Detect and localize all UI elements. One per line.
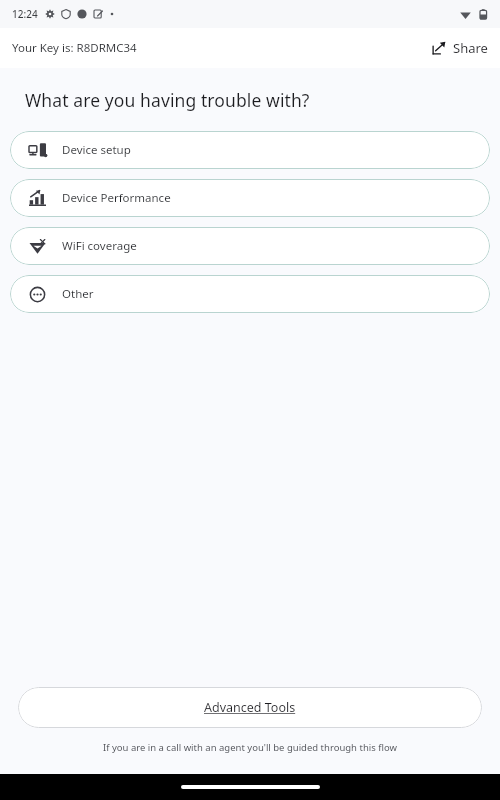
staticText: WiFi coverage: [62, 238, 137, 254]
staticText: Your Key is: R8DRMC34: [12, 40, 137, 56]
button[interactable]: Device Performance: [10, 179, 490, 217]
button[interactable]: Other: [10, 275, 490, 313]
staticText: Device Performance: [62, 190, 171, 206]
staticText: Share: [453, 39, 488, 57]
staticText: If you are in a call with an agent you'l…: [103, 741, 397, 754]
button[interactable]: WiFi coverage: [10, 227, 490, 265]
button[interactable]: Share: [422, 33, 500, 63]
staticText: Advanced Tools: [204, 699, 296, 716]
staticText: 12:24: [12, 7, 38, 21]
staticText: What are you having trouble with?: [25, 88, 310, 112]
staticText: Device setup: [62, 142, 131, 158]
staticText: Other: [62, 286, 94, 302]
button[interactable]: Device setup: [10, 131, 490, 169]
button[interactable]: Advanced Tools: [18, 687, 482, 728]
